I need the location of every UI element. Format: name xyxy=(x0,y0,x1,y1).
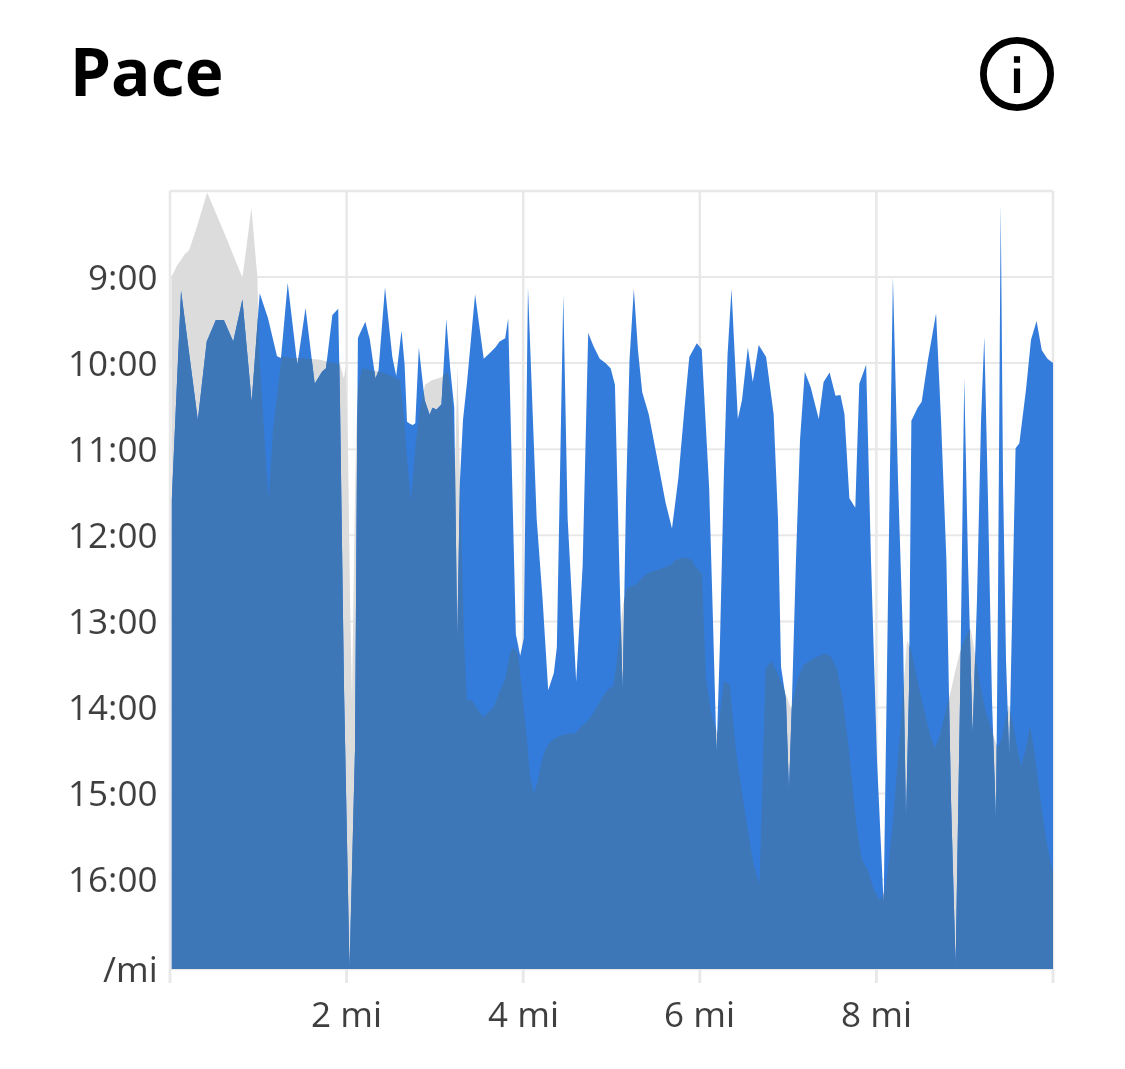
staticText: 12:00 xyxy=(68,511,158,559)
staticText: 10:00 xyxy=(68,339,158,387)
staticText: 11:00 xyxy=(68,425,158,473)
staticText: Pace xyxy=(70,25,224,115)
staticText: 13:00 xyxy=(68,597,158,645)
staticText: 2 mi xyxy=(311,990,382,1038)
staticText: 8 mi xyxy=(841,990,912,1038)
button[interactable]: Info xyxy=(980,37,1054,111)
staticText: 16:00 xyxy=(68,855,158,903)
staticText: 4 mi xyxy=(488,990,559,1038)
staticText: 6 mi xyxy=(664,990,735,1038)
staticText: 15:00 xyxy=(68,769,158,817)
staticText: 14:00 xyxy=(68,683,158,731)
staticText: 9:00 xyxy=(88,253,158,301)
staticText: /mi xyxy=(103,945,158,993)
